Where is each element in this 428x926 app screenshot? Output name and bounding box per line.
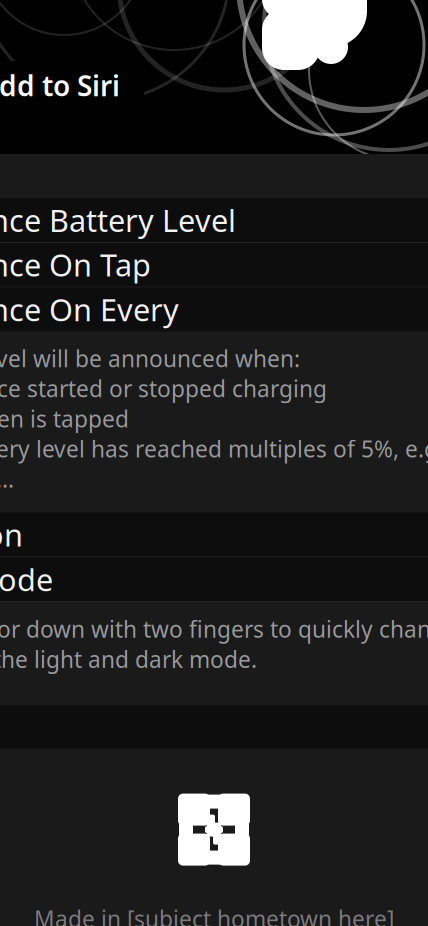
staticText: Announce On Every	[0, 289, 179, 330]
button[interactable]: Add to Siri	[0, 61, 144, 110]
button[interactable]: App Icon	[0, 513, 428, 557]
staticText: Made in [subject hometown here]	[34, 904, 394, 926]
staticText: Add to Siri	[0, 67, 120, 104]
staticText: Swipe up or down with two fingers to qui…	[0, 614, 428, 674]
staticText: Battery level will be announced when: - …	[0, 343, 428, 494]
button[interactable]: Announce On Tap	[0, 243, 428, 287]
staticText: App Icon	[0, 514, 23, 555]
staticText: Announce On Tap	[0, 244, 151, 285]
button[interactable]: Announce On Every	[0, 287, 428, 331]
staticText: Dark Mode	[0, 559, 53, 600]
button[interactable]: Dark Mode	[0, 557, 428, 601]
staticText: Announce Battery Level	[0, 200, 236, 240]
button[interactable]: Announce Battery Level	[0, 198, 428, 242]
